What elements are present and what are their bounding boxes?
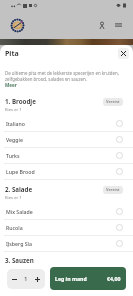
button[interactable]: IJsberg Sla bbox=[0, 236, 133, 251]
staticText: Italiano bbox=[6, 120, 25, 127]
staticText: Leg in mand bbox=[55, 275, 87, 282]
button[interactable]: Menu bbox=[112, 19, 124, 31]
button[interactable]: Turks bbox=[0, 148, 133, 163]
staticText: Vereist bbox=[106, 99, 120, 105]
staticText: 2. Salade bbox=[5, 185, 33, 193]
button[interactable]: Decrease quantity bbox=[9, 274, 20, 285]
button[interactable]: Veggie bbox=[0, 132, 133, 147]
staticText: 1. Broodje bbox=[5, 97, 36, 105]
button[interactable]: Lupe Brood bbox=[0, 164, 133, 179]
staticText: Lupe Brood bbox=[6, 168, 35, 175]
button[interactable]: Leg in mand bbox=[50, 267, 126, 290]
button[interactable]: Rucola bbox=[0, 220, 133, 235]
staticText: Mix Salade bbox=[6, 208, 33, 215]
button[interactable]: Increase quantity bbox=[32, 274, 43, 285]
staticText: €4,00 bbox=[107, 275, 121, 282]
staticText: Kies er 1 bbox=[5, 107, 22, 113]
button[interactable]: Account bbox=[96, 19, 108, 31]
staticText: IJsberg Sla bbox=[6, 240, 32, 247]
staticText: Kies er 1 bbox=[5, 195, 22, 201]
staticText: De ultieme pita met de lekkerste speceri… bbox=[5, 70, 125, 82]
button[interactable]: Mix Salade bbox=[0, 204, 133, 219]
staticText: Vereist bbox=[106, 187, 120, 193]
staticText: 1 bbox=[24, 275, 28, 283]
staticText: Turks bbox=[6, 152, 20, 159]
staticText: Pita bbox=[5, 49, 19, 59]
button[interactable]: Logo bbox=[10, 18, 25, 33]
staticText: 3. Sauzen bbox=[5, 256, 34, 264]
button[interactable]: Italiano bbox=[0, 116, 133, 131]
staticText: Veggie bbox=[6, 136, 23, 143]
button[interactable]: Meer bbox=[5, 82, 17, 88]
button[interactable]: Close bbox=[118, 48, 129, 59]
staticText: Rucola bbox=[6, 224, 23, 231]
